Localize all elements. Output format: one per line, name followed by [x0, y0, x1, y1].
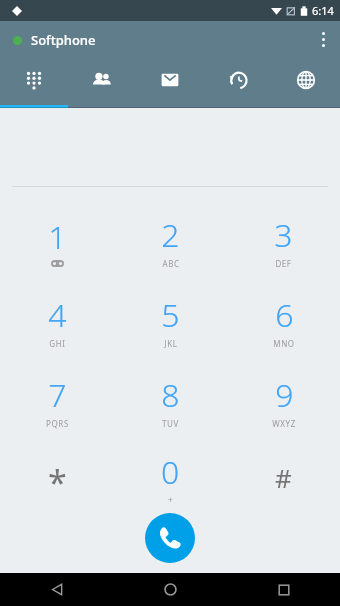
button[interactable]: Messages [136, 58, 204, 108]
staticText: 5 [161, 293, 180, 337]
staticText: + [168, 494, 173, 505]
staticText: MNO [273, 338, 295, 349]
button[interactable]: More options [306, 21, 340, 58]
button[interactable]: * [0, 441, 114, 513]
staticText: Softphone [31, 31, 96, 49]
staticText: 0 [161, 450, 180, 494]
button[interactable]: 6 [227, 281, 340, 361]
staticText: GHI [49, 338, 66, 349]
button[interactable]: 4 [0, 281, 114, 361]
button[interactable]: Dialpad [0, 58, 68, 108]
staticText: DEF [275, 258, 292, 269]
button[interactable]: 3 [227, 201, 340, 281]
button[interactable]: 5 [114, 281, 227, 361]
button[interactable]: 2 [114, 201, 227, 281]
staticText: PQRS [46, 418, 69, 429]
staticText: TUV [162, 418, 179, 429]
staticText: 3 [274, 213, 293, 257]
staticText: JKL [164, 338, 178, 349]
button[interactable]: 7 [0, 361, 114, 441]
button[interactable]: Recents [227, 573, 340, 606]
button[interactable]: Web [272, 58, 340, 108]
button[interactable]: Home [114, 573, 227, 606]
staticText: 6 [275, 293, 294, 337]
staticText: 8 [161, 373, 180, 417]
button[interactable]: 0 [114, 441, 227, 513]
staticText: WXYZ [272, 418, 296, 429]
button[interactable]: 8 [114, 361, 227, 441]
staticText: 1 [48, 215, 67, 259]
staticText: 6:14 [312, 3, 334, 18]
staticText: 4 [48, 293, 67, 337]
button[interactable]: History [204, 58, 272, 108]
staticText: * [48, 459, 67, 505]
button[interactable]: Back [0, 573, 114, 606]
staticText: 9 [275, 373, 294, 417]
button[interactable]: 9 [227, 361, 340, 441]
button[interactable]: Call [145, 513, 195, 563]
staticText: 2 [161, 213, 180, 257]
staticText: ABC [162, 258, 180, 269]
button[interactable]: 1 [0, 201, 114, 281]
staticText: # [275, 460, 292, 495]
staticText: 7 [48, 373, 67, 417]
button[interactable]: Contacts [68, 58, 136, 108]
button[interactable]: # [227, 441, 340, 513]
